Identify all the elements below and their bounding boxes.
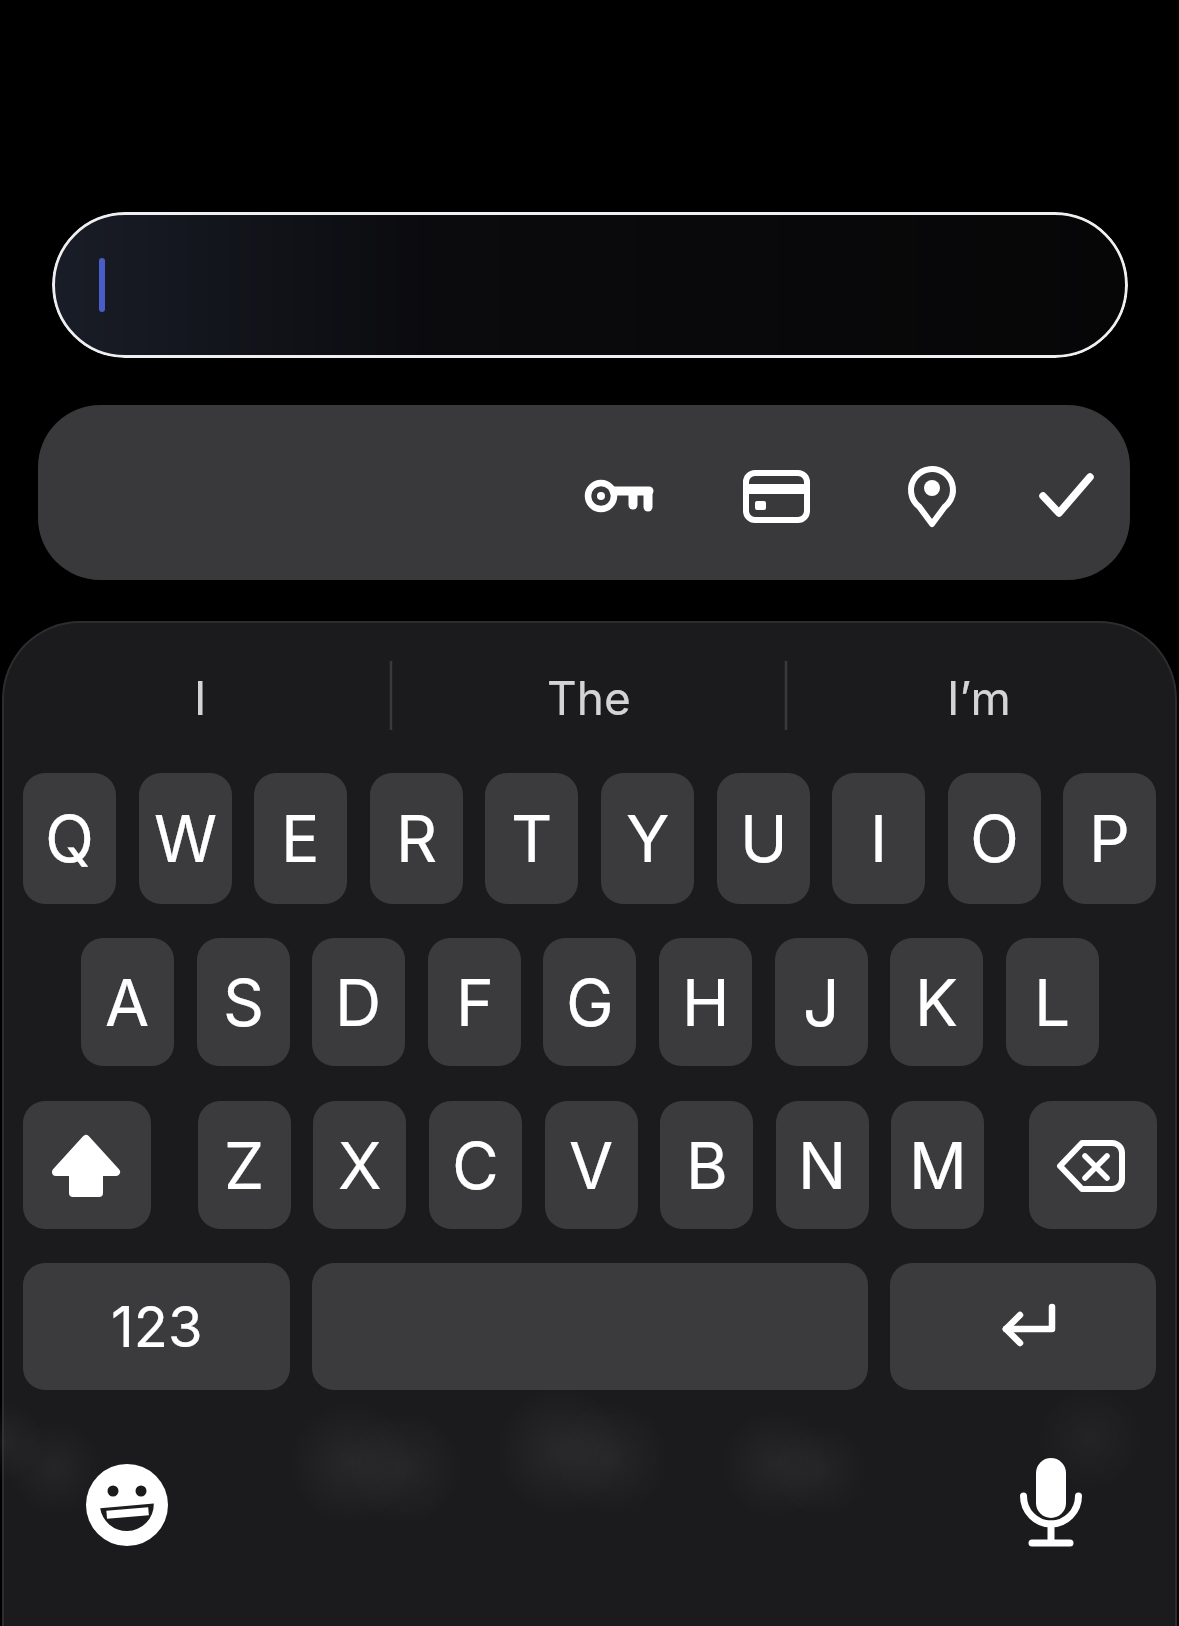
button[interactable] [569,446,669,546]
staticText: N [798,1127,847,1204]
staticText: L [1034,964,1071,1041]
button[interactable]: U [717,773,810,904]
button[interactable]: 123 [23,1263,290,1390]
button[interactable]: I [832,773,925,904]
staticText: J [803,964,840,1041]
staticText: M [909,1127,967,1204]
button[interactable]: Q [23,773,116,904]
button[interactable]: G [543,938,636,1066]
button[interactable]: E [254,773,347,904]
staticText: E [281,800,320,877]
button[interactable]: R [370,773,463,904]
button[interactable]: The [392,645,785,750]
staticText: Q [45,800,94,877]
staticText: A [105,964,150,1041]
staticText: U [740,800,788,877]
button[interactable]: D [312,938,405,1066]
button[interactable]: B [660,1101,753,1229]
button[interactable]: I’m [787,645,1171,750]
staticText: I’m [947,670,1011,726]
button[interactable]: T [485,773,578,904]
staticText: K [915,964,958,1041]
staticText: V [569,1127,614,1204]
button[interactable]: M [891,1101,984,1229]
staticText: Z [224,1127,265,1204]
button[interactable]: Z [198,1101,291,1229]
button[interactable]: Y [601,773,694,904]
staticText: X [338,1127,382,1204]
staticText: W [154,800,218,877]
staticText: H [682,964,730,1041]
button[interactable]: J [775,938,868,1066]
button[interactable] [1016,446,1116,546]
staticText: O [970,800,1019,877]
staticText: G [566,964,614,1041]
button[interactable] [1029,1101,1157,1229]
staticText: I [870,800,888,877]
button[interactable]: V [545,1101,638,1229]
button[interactable] [23,1101,151,1229]
button[interactable]: X [313,1101,406,1229]
button[interactable] [1000,1444,1102,1554]
button[interactable] [76,1454,178,1556]
button[interactable] [726,446,826,546]
button[interactable] [52,212,1128,358]
button[interactable]: O [948,773,1041,904]
button[interactable] [890,1263,1156,1390]
button[interactable] [882,446,982,546]
button[interactable]: P [1063,773,1156,904]
staticText: 123 [111,1293,203,1361]
button[interactable]: K [890,938,983,1066]
staticText: R [396,800,438,877]
staticText: T [511,800,553,877]
staticText: Y [626,800,670,877]
staticText: D [335,964,382,1041]
staticText: The [547,670,631,726]
button[interactable]: A [81,938,174,1066]
staticText: C [452,1127,499,1204]
staticText: B [686,1127,728,1204]
button[interactable]: W [139,773,232,904]
staticText: P [1089,800,1130,877]
button[interactable]: I [10,645,390,750]
button[interactable]: F [428,938,521,1066]
staticText: F [456,964,494,1041]
button[interactable]: H [659,938,752,1066]
button[interactable]: S [197,938,290,1066]
button[interactable]: N [776,1101,869,1229]
button[interactable]: C [429,1101,522,1229]
staticText: I [194,670,207,726]
button[interactable]: L [1006,938,1099,1066]
staticText: S [223,964,265,1041]
